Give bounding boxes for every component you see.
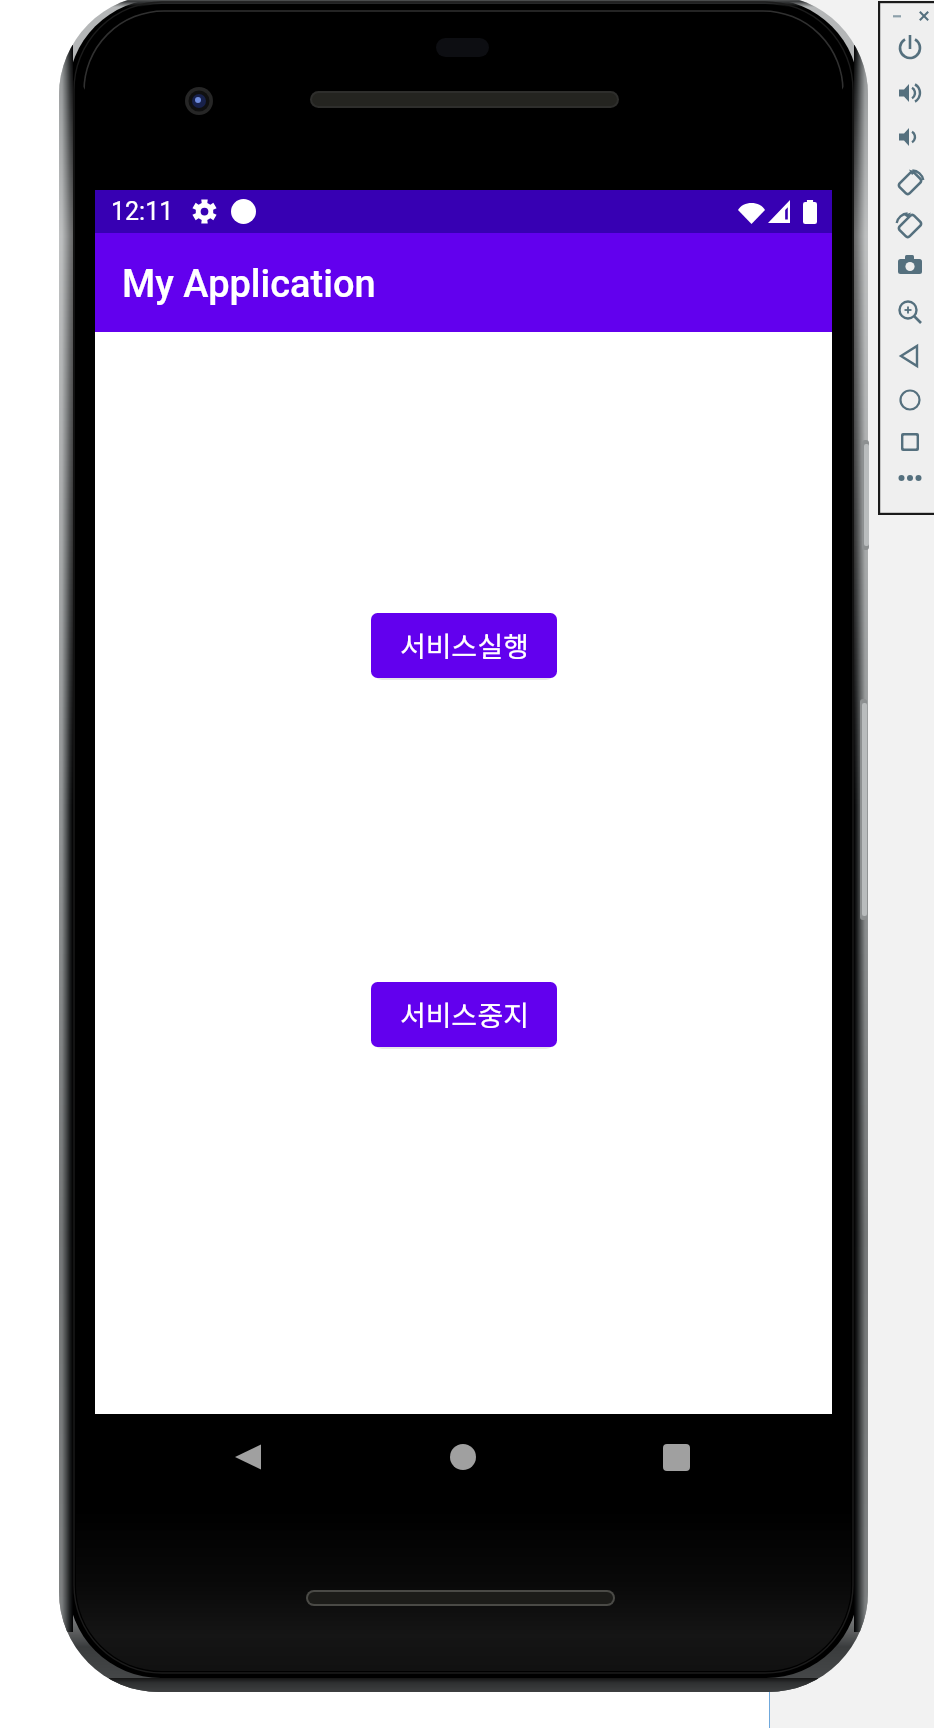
button[interactable]: Back <box>205 1414 291 1500</box>
staticText: My Application <box>122 262 376 307</box>
button[interactable]: Screenshot <box>878 253 934 297</box>
staticText: 서비스중지 <box>400 994 529 1035</box>
button[interactable]: Home <box>878 385 934 429</box>
button[interactable]: Home <box>420 1414 506 1500</box>
button[interactable]: Zoom <box>878 297 934 341</box>
button[interactable]: Recents <box>878 429 934 473</box>
button[interactable]: More <box>878 473 934 515</box>
button[interactable]: Volume up <box>878 77 934 121</box>
button[interactable]: Rotate right <box>878 209 934 253</box>
staticText: 12:11 <box>111 197 174 226</box>
button[interactable]: Recents <box>633 1414 719 1500</box>
button[interactable]: Volume down <box>878 121 934 165</box>
button[interactable]: 서비스중지 <box>371 982 557 1047</box>
button[interactable]: 서비스실행 <box>371 613 557 678</box>
button[interactable]: Rotate left <box>878 165 934 209</box>
button[interactable]: Power <box>878 33 934 77</box>
button[interactable]: Back <box>878 341 934 385</box>
staticText: 서비스실행 <box>400 625 529 666</box>
